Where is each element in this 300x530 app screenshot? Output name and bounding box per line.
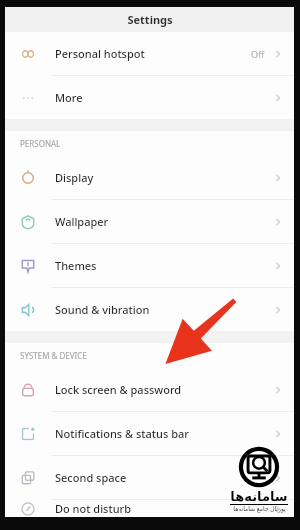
staticText: Display — [55, 170, 94, 185]
button[interactable]: Sound & vibration — [5, 288, 294, 331]
staticText: Second space — [55, 470, 127, 485]
button[interactable]: Themes — [5, 244, 294, 288]
staticText: پورتال جامع سامانه‌ها — [233, 505, 286, 513]
button[interactable]: Second space — [5, 456, 294, 500]
staticText: Lock screen & password — [55, 382, 182, 397]
staticText: Sound & vibration — [55, 302, 150, 317]
staticText: سامانه‌ها — [230, 489, 288, 504]
staticText: SYSTEM & DEVICE — [20, 350, 87, 361]
staticText: Themes — [55, 258, 97, 273]
button[interactable]: More — [5, 76, 294, 119]
staticText: Off — [251, 48, 265, 60]
button[interactable]: Lock screen & password — [5, 368, 294, 412]
staticText: Settings — [127, 12, 173, 27]
button[interactable]: Wallpaper — [5, 200, 294, 244]
staticText: Do not disturb — [55, 501, 132, 516]
button[interactable]: Display — [5, 156, 294, 200]
staticText: PERSONAL — [20, 138, 61, 149]
button[interactable]: Notifications & status bar — [5, 412, 294, 456]
button[interactable]: Personal hotspot — [5, 32, 294, 76]
staticText: More — [55, 90, 83, 105]
staticText: Wallpaper — [55, 214, 109, 229]
staticText: Personal hotspot — [55, 46, 145, 61]
staticText: Notifications & status bar — [55, 426, 189, 441]
button[interactable]: Do not disturb — [5, 500, 294, 517]
